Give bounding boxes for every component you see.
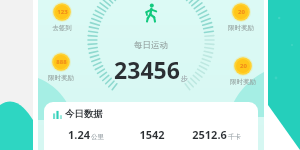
staticText: 公里 bbox=[91, 133, 104, 141]
button[interactable]: 20 bbox=[228, 2, 254, 32]
button[interactable]: 20 bbox=[230, 56, 256, 86]
staticText: 去签到 bbox=[52, 24, 72, 32]
staticText: 步 bbox=[181, 74, 188, 83]
button[interactable]: 2512.6 bbox=[184, 127, 249, 142]
staticText: 千卡 bbox=[228, 133, 241, 141]
staticText: 1.24 bbox=[68, 127, 90, 142]
button[interactable]: 今日数据 bbox=[44, 102, 258, 150]
staticText: 20 bbox=[238, 8, 245, 16]
staticText: 今日数据 bbox=[65, 108, 103, 120]
other: Walking activity bbox=[141, 3, 161, 23]
staticText: 限时奖励 bbox=[228, 24, 254, 32]
staticText: 限时奖励 bbox=[48, 74, 74, 82]
button[interactable]: 1.24 bbox=[53, 127, 119, 142]
button[interactable]: 888 bbox=[48, 52, 74, 82]
staticText: 限时奖励 bbox=[230, 78, 256, 86]
staticText: 2512.6 bbox=[192, 127, 227, 142]
button[interactable]: 123 bbox=[52, 2, 72, 32]
staticText: 20 bbox=[240, 62, 247, 70]
button[interactable]: Walking activity bbox=[114, 3, 188, 85]
button[interactable]: 1542 bbox=[119, 127, 184, 142]
staticText: 1542 bbox=[139, 127, 165, 142]
staticText: 每日运动 bbox=[134, 40, 168, 51]
staticText: 23456 bbox=[114, 54, 180, 85]
staticText: 888 bbox=[56, 58, 67, 66]
staticText: 123 bbox=[57, 8, 68, 16]
